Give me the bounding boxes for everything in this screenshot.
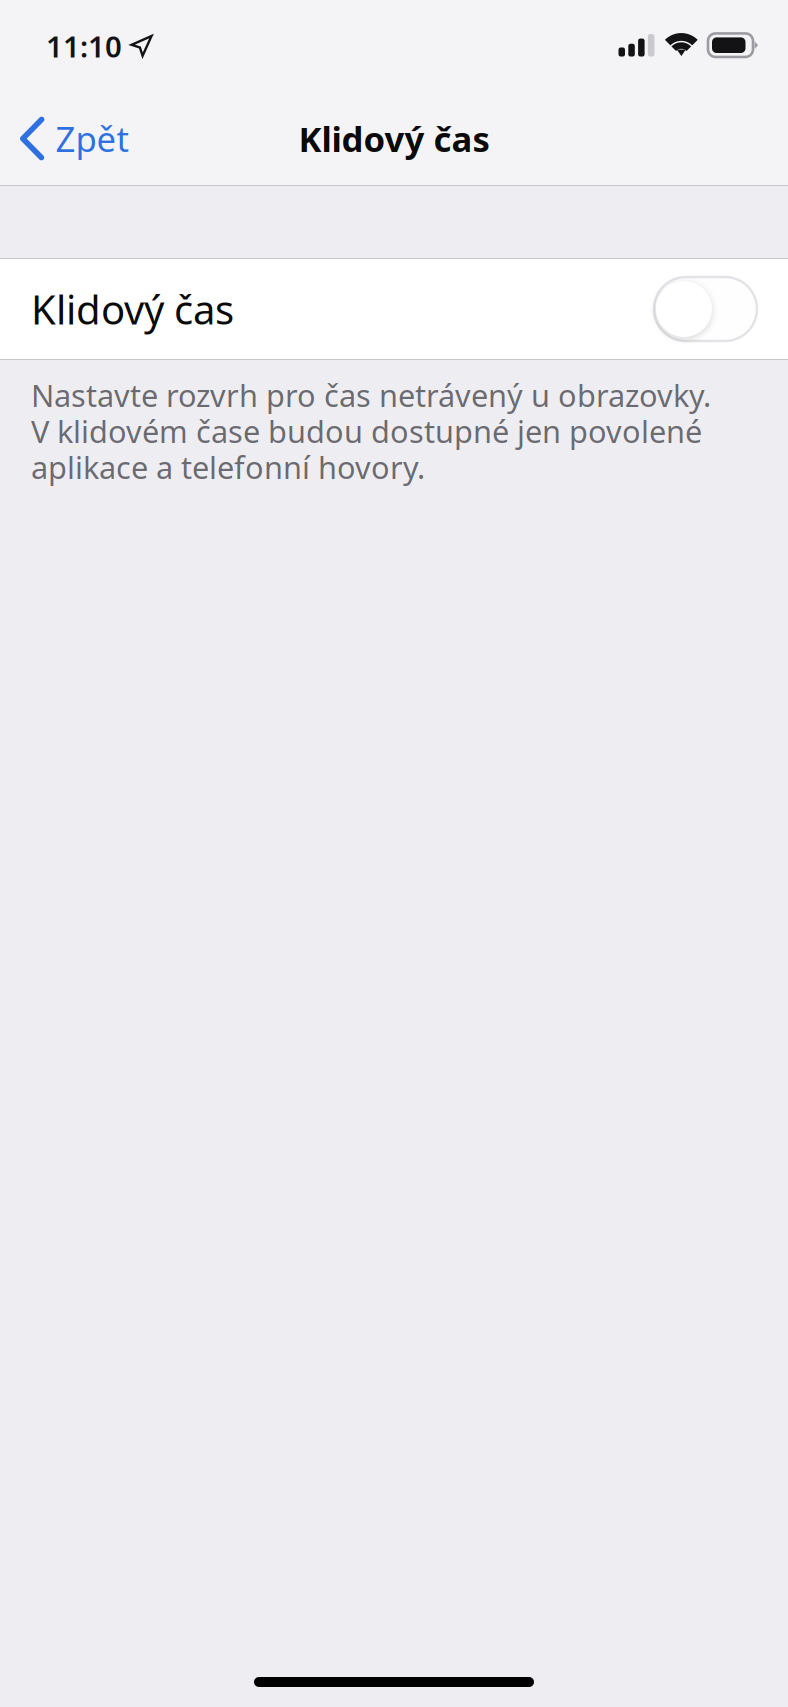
staticText: Klidový čas [31, 282, 234, 335]
staticText: V klidovém čase budou dostupné jen povol… [31, 411, 702, 451]
staticText: 11:10 [46, 26, 122, 65]
staticText: Zpět [55, 115, 129, 161]
button[interactable]: Zpět [0, 92, 146, 185]
button[interactable]: Klidový čas [0, 259, 788, 359]
staticText: aplikace a telefonní hovory. [31, 447, 425, 487]
button[interactable]: Klidový čas, vypnuto [654, 277, 757, 341]
staticText: Nastavte rozvrh pro čas netrávený u obra… [31, 375, 711, 415]
staticText: Klidový čas [298, 115, 489, 161]
